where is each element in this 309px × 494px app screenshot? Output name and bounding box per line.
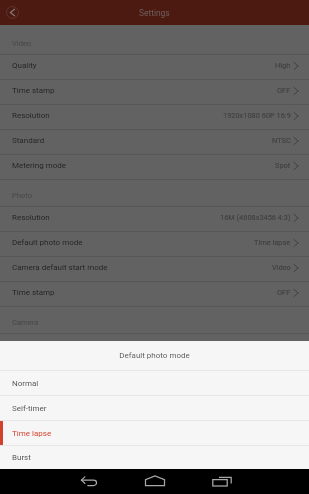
staticText: High — [275, 61, 291, 70]
staticText: Metering mode — [12, 161, 66, 170]
staticText: Normal — [12, 379, 39, 388]
button[interactable]: Resolution — [0, 207, 309, 232]
staticText: Time lapse — [254, 238, 291, 247]
staticText: Time stamp — [12, 288, 55, 297]
staticText: Resolution — [12, 213, 50, 222]
button[interactable]: Back — [76, 469, 102, 494]
staticText: Quality — [12, 61, 37, 70]
staticText: Standard — [12, 136, 45, 145]
staticText: Time lapse — [12, 429, 52, 438]
staticText: OFF — [277, 86, 291, 95]
staticText: Spot — [275, 161, 291, 170]
button[interactable]: Self-timer — [0, 396, 309, 421]
button[interactable]: Resolution — [0, 105, 309, 130]
button[interactable]: Recent apps — [209, 469, 235, 494]
staticText: Settings — [139, 8, 170, 18]
staticText: Burst — [12, 453, 31, 462]
staticText: Default photo mode — [119, 351, 190, 360]
staticText: Photo — [12, 191, 33, 200]
button[interactable]: Time lapse — [0, 421, 309, 446]
button[interactable]: Home — [142, 469, 168, 494]
button[interactable]: Metering mode — [0, 155, 309, 180]
staticText: Self-timer — [12, 404, 47, 413]
staticText: Video — [12, 39, 32, 48]
staticText: 1920x1080 60P 16:9 — [223, 111, 291, 120]
button[interactable]: Time stamp — [0, 282, 309, 307]
staticText: 16M (4608x3456 4:3) — [220, 213, 291, 222]
staticText: Default photo mode — [12, 238, 83, 247]
button[interactable]: Quality — [0, 55, 309, 80]
staticText: Camera — [12, 318, 39, 327]
staticText: Camera default start mode — [12, 263, 108, 272]
staticText: Video — [272, 263, 291, 272]
staticText: Resolution — [12, 111, 50, 120]
button[interactable]: Camera default start mode — [0, 257, 309, 282]
button[interactable]: Burst — [0, 446, 309, 469]
button[interactable]: Normal — [0, 371, 309, 396]
staticText: OFF — [277, 288, 291, 297]
button[interactable]: Default photo mode — [0, 232, 309, 257]
button[interactable]: Back — [2, 2, 23, 23]
button[interactable]: Standard — [0, 130, 309, 155]
staticText: NTSC — [272, 136, 291, 145]
button[interactable]: Time stamp — [0, 80, 309, 105]
staticText: Time stamp — [12, 86, 55, 95]
